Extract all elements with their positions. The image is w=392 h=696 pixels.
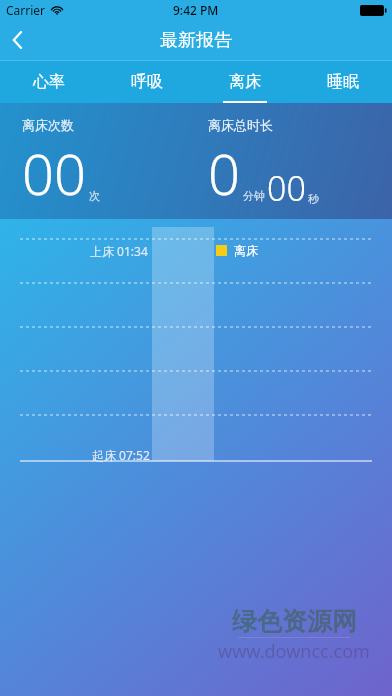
button[interactable]: 离床 (196, 60, 294, 103)
staticText: 呼吸 (131, 72, 163, 92)
staticText: www.downcc.com (218, 639, 370, 664)
staticText: 起床 07:52 (92, 447, 150, 463)
button[interactable]: 呼吸 (98, 60, 196, 103)
staticText: 离床 (234, 243, 258, 258)
staticText: 分钟 (243, 189, 265, 203)
staticText: Carrier (6, 2, 46, 18)
staticText: 00 (267, 165, 306, 211)
button[interactable]: 睡眠 (294, 60, 392, 103)
staticText: 9:42 PM (173, 2, 219, 18)
staticText: 00 (22, 135, 86, 211)
staticText: 离床总时长 (208, 117, 273, 133)
staticText: 睡眠 (327, 72, 359, 92)
staticText: 心率 (33, 72, 65, 92)
staticText: 秒 (308, 192, 319, 206)
button[interactable]: Back (0, 20, 44, 60)
staticText: 0 (208, 135, 240, 211)
staticText: 离床次数 (22, 117, 74, 133)
button[interactable]: 心率 (0, 60, 98, 103)
staticText: 最新报告 (160, 29, 232, 52)
staticText: 离床 (229, 72, 261, 92)
staticText: 绿色资源网 (232, 606, 357, 637)
staticText: 上床 01:34 (90, 243, 148, 259)
staticText: 次 (89, 189, 100, 203)
